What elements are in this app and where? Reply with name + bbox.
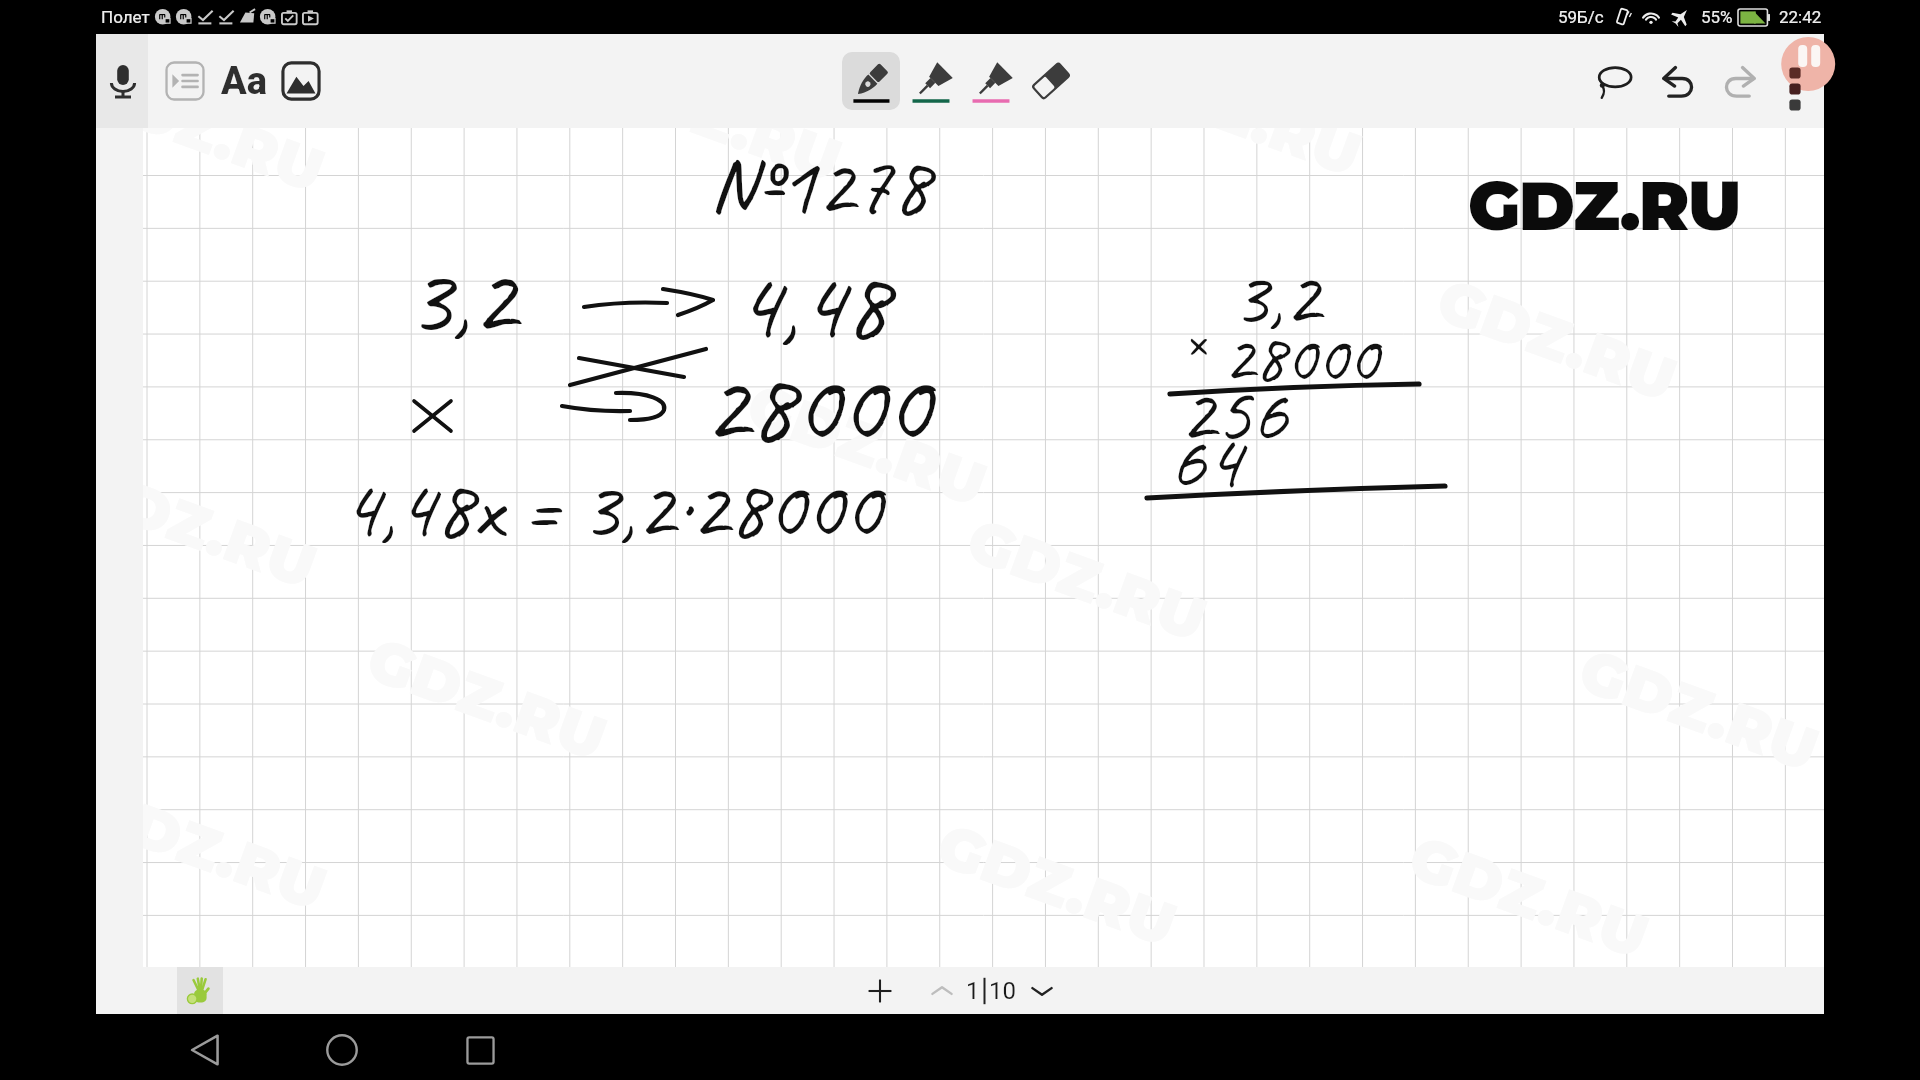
staticText: GDZ.RU (1428, 263, 1686, 416)
staticText: 64 (1169, 410, 1241, 511)
staticText: 28000 (703, 342, 931, 469)
button[interactable]: Next page (1022, 971, 1062, 1011)
button[interactable]: More options (1767, 53, 1823, 109)
staticText: GDZ.RU (958, 503, 1216, 656)
button[interactable]: Insert image (275, 55, 327, 107)
staticText: 1 (966, 977, 980, 1005)
staticText: GDZ.RU (143, 772, 336, 925)
button[interactable]: Pan mode (177, 967, 223, 1014)
button[interactable]: Aa (217, 54, 271, 108)
staticText: Aa (221, 59, 267, 104)
staticText: GDZ.RU (1113, 128, 1371, 191)
staticText: 4,48x = 3,2·28000 (341, 454, 882, 561)
staticText: GDZ.RU (358, 622, 616, 775)
staticText: №1278 (709, 132, 930, 238)
button[interactable]: Eraser (1022, 52, 1080, 110)
staticText: GDZ.RU (738, 368, 996, 521)
button[interactable]: Outline (159, 55, 211, 107)
staticText: GDZ.RU (593, 128, 851, 197)
button[interactable]: Previous page (922, 971, 962, 1011)
staticText: 256 (1179, 363, 1287, 464)
button[interactable]: Recent apps (444, 1017, 516, 1080)
staticText: GDZ.RU (143, 128, 334, 207)
staticText: GDZ.RU (1468, 164, 1740, 247)
staticText: Полет (101, 7, 150, 27)
button[interactable]: Undo (1653, 56, 1703, 106)
button[interactable]: Pink highlighter (962, 52, 1020, 110)
button[interactable]: Lasso select (1591, 56, 1641, 106)
staticText: GDZ.RU (928, 808, 1186, 961)
staticText: 3,2 (407, 236, 516, 361)
staticText: GDZ.RU (143, 450, 326, 603)
staticText: 28000 (1223, 314, 1379, 401)
staticText: 55% (1701, 7, 1733, 27)
button[interactable]: Add page (858, 969, 902, 1013)
button[interactable]: Back (170, 1017, 242, 1080)
button[interactable]: Green highlighter (902, 52, 960, 110)
button[interactable]: Redo (1715, 56, 1765, 106)
staticText: 59Б/с (1558, 7, 1604, 27)
staticText: 3,2 (1232, 246, 1320, 347)
button[interactable]: Pen tool (842, 52, 900, 110)
staticText: × (1183, 306, 1208, 374)
staticText: GDZ.RU (1400, 820, 1658, 967)
staticText: 10 (989, 977, 1016, 1005)
staticText: 22:42 (1779, 7, 1822, 27)
button[interactable]: Voice recording (97, 55, 149, 107)
staticText: 4,48 (735, 242, 889, 367)
button[interactable]: Home (306, 1017, 378, 1080)
staticText: GDZ.RU (1570, 633, 1824, 786)
